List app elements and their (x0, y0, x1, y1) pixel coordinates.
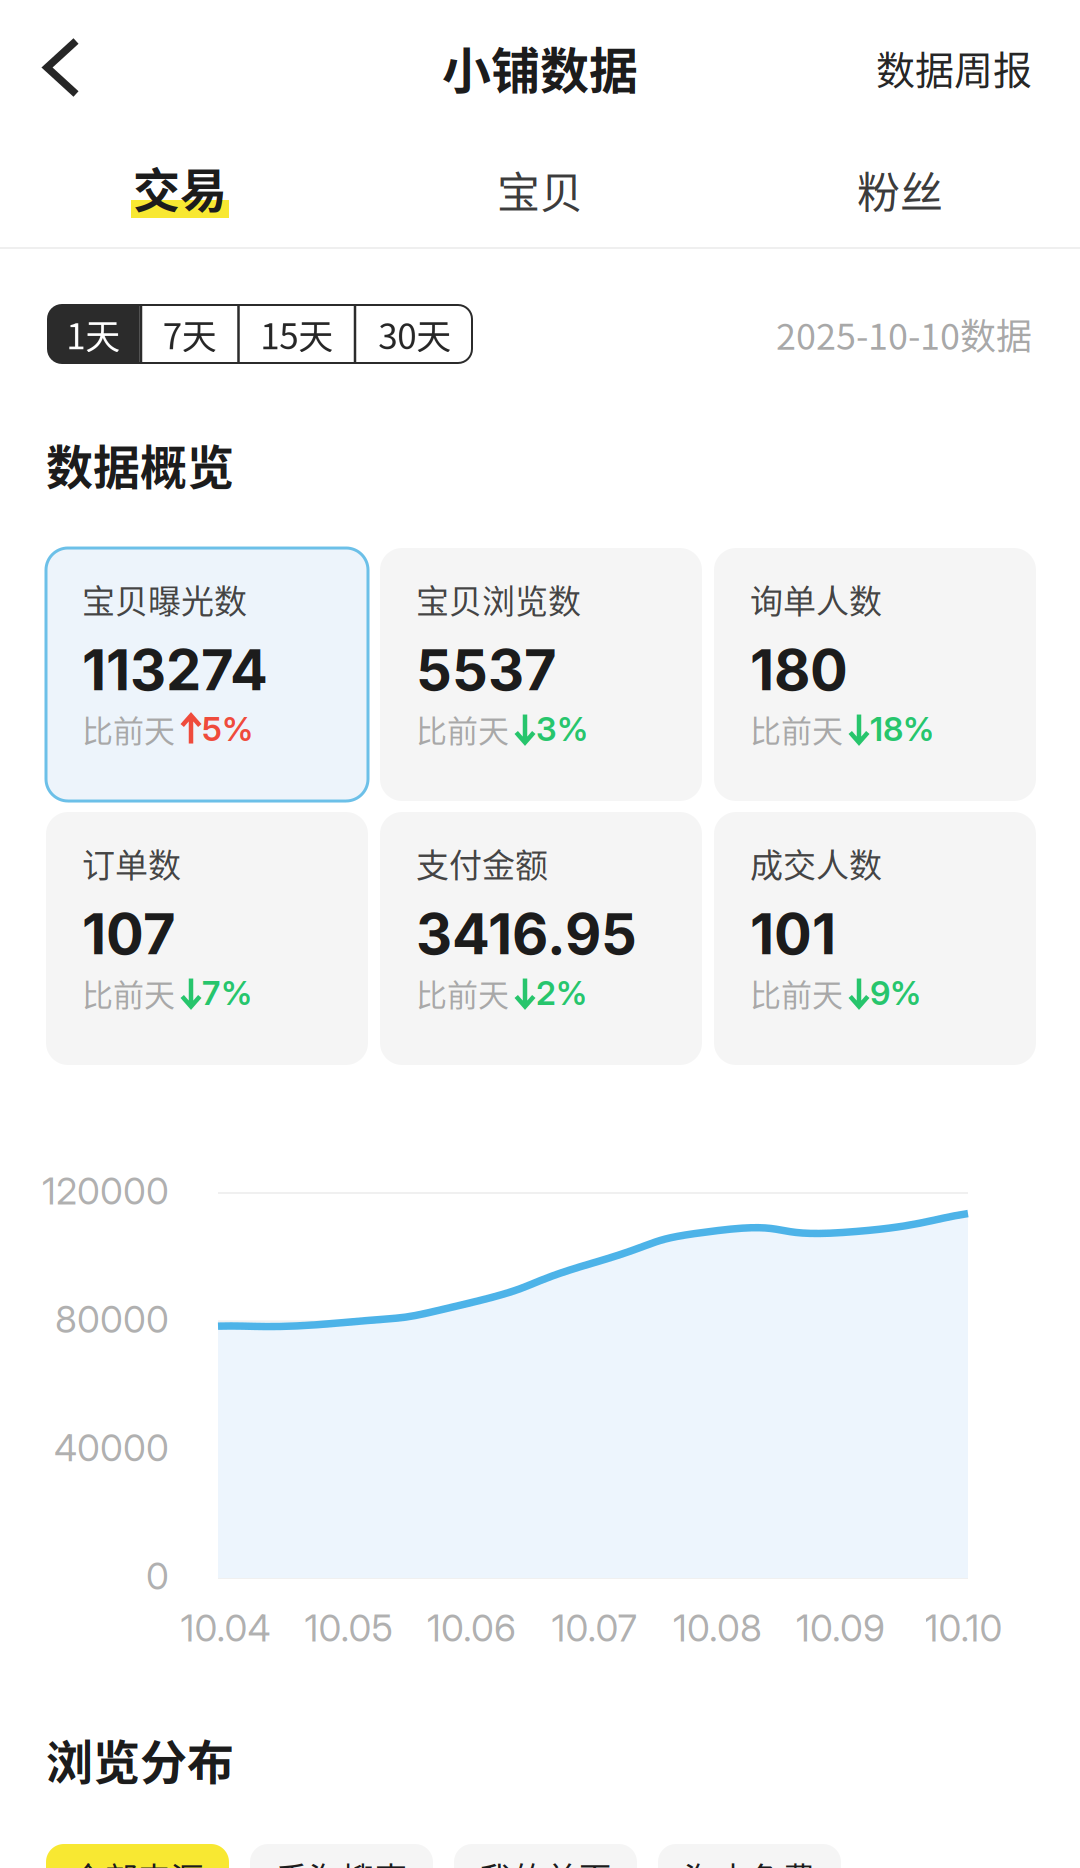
button[interactable]: 我的首页 (454, 1844, 637, 1868)
staticText: 比前天 (82, 707, 175, 751)
staticText: 3416.95 (416, 900, 637, 968)
staticText: 7% (202, 973, 252, 1013)
staticText: 比前天 (750, 707, 843, 751)
staticText: 10.06 (427, 1606, 516, 1650)
staticText: 10.09 (796, 1606, 885, 1650)
staticText: 120000 (42, 1169, 169, 1213)
staticText: 10.10 (924, 1606, 1002, 1650)
button[interactable]: 数据周报 (852, 9, 1080, 126)
staticText: 我的首页 (479, 1853, 611, 1868)
button[interactable]: 1天 (47, 305, 140, 363)
staticText: 2% (536, 973, 587, 1013)
staticText: 粉丝 (857, 159, 943, 221)
staticText: 手淘搜索 (275, 1853, 407, 1868)
button[interactable]: 询单人数 (714, 548, 1036, 801)
staticText: 5% (202, 709, 253, 749)
staticText: 宝贝曝光数 (82, 575, 247, 623)
staticText: 1天 (66, 309, 120, 359)
staticText: 15天 (260, 309, 333, 359)
staticText: 7天 (163, 309, 217, 359)
button[interactable]: 全部来源 (46, 1844, 229, 1868)
staticText: 30天 (378, 309, 451, 359)
staticText: 107 (82, 900, 176, 968)
staticText: 全部来源 (71, 1853, 203, 1868)
button[interactable]: 15天 (240, 305, 354, 363)
button[interactable]: 粉丝 (720, 135, 1080, 247)
staticText: 淘内免费 (683, 1853, 815, 1868)
button[interactable]: 宝贝曝光数 (46, 548, 368, 801)
staticText: 180 (750, 636, 848, 704)
staticText: 10.08 (673, 1606, 762, 1650)
staticText: 交易 (133, 153, 227, 221)
staticText: 成交人数 (750, 839, 882, 887)
staticText: 10.04 (180, 1606, 270, 1650)
staticText: 10.05 (304, 1606, 392, 1650)
button[interactable]: 30天 (356, 305, 473, 363)
staticText: 小铺数据 (442, 32, 638, 103)
staticText: 80000 (55, 1297, 169, 1342)
staticText: 数据概览 (46, 430, 234, 498)
staticText: 5537 (416, 636, 557, 704)
staticText: 9% (870, 973, 921, 1013)
button[interactable]: 成交人数 (714, 812, 1036, 1065)
staticText: 3% (536, 709, 588, 749)
staticText: 订单数 (82, 839, 181, 887)
staticText: 40000 (54, 1425, 169, 1470)
staticText: 询单人数 (750, 575, 882, 623)
staticText: 浏览分布 (46, 1725, 234, 1793)
staticText: 10.07 (551, 1606, 637, 1650)
button[interactable]: 支付金额 (380, 812, 702, 1065)
staticText: 数据周报 (876, 39, 1032, 96)
staticText: 宝贝浏览数 (416, 575, 581, 623)
staticText: 113274 (82, 636, 268, 704)
staticText: 比前天 (82, 971, 175, 1015)
button[interactable]: 宝贝浏览数 (380, 548, 702, 801)
staticText: 18% (870, 709, 934, 749)
staticText: 比前天 (416, 707, 509, 751)
staticText: 比前天 (416, 971, 509, 1015)
staticText: 比前天 (750, 971, 843, 1015)
button[interactable]: 宝贝 (360, 135, 720, 247)
button[interactable]: 订单数 (46, 812, 368, 1065)
staticText: 宝贝 (497, 159, 583, 221)
button[interactable]: 7天 (142, 305, 237, 363)
staticText: 101 (750, 900, 836, 968)
staticText: 2025-10-10数据 (776, 308, 1032, 360)
button[interactable]: 交易 (0, 135, 360, 247)
staticText: 0 (146, 1554, 169, 1598)
staticText: 支付金额 (416, 839, 548, 887)
button[interactable]: 手淘搜索 (250, 1844, 433, 1868)
button[interactable]: Back (0, 11, 120, 124)
button[interactable]: 淘内免费 (658, 1844, 841, 1868)
